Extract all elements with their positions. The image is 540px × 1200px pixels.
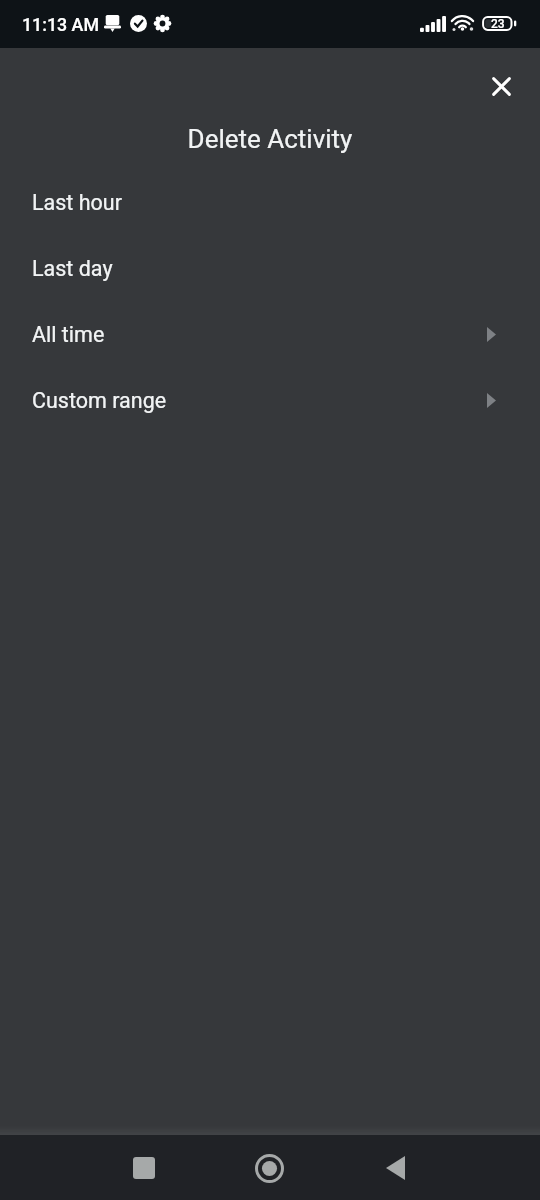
staticText: Last day — [32, 256, 496, 281]
button[interactable]: Last day — [0, 235, 540, 301]
staticText: Delete Activity — [0, 124, 540, 154]
button[interactable]: All time — [0, 301, 540, 367]
staticText: 11:13 AM — [22, 14, 99, 35]
staticText: All time — [32, 322, 487, 347]
button[interactable]: Recent apps — [120, 1144, 168, 1192]
button[interactable]: Back — [371, 1144, 419, 1192]
button[interactable]: Close — [479, 64, 523, 108]
staticText: Custom range — [32, 388, 487, 413]
button[interactable]: Last hour — [0, 169, 540, 235]
button[interactable]: Custom range — [0, 367, 540, 433]
button[interactable]: Home — [245, 1144, 293, 1192]
staticText: 23 — [491, 17, 505, 31]
staticText: Last hour — [32, 190, 496, 215]
